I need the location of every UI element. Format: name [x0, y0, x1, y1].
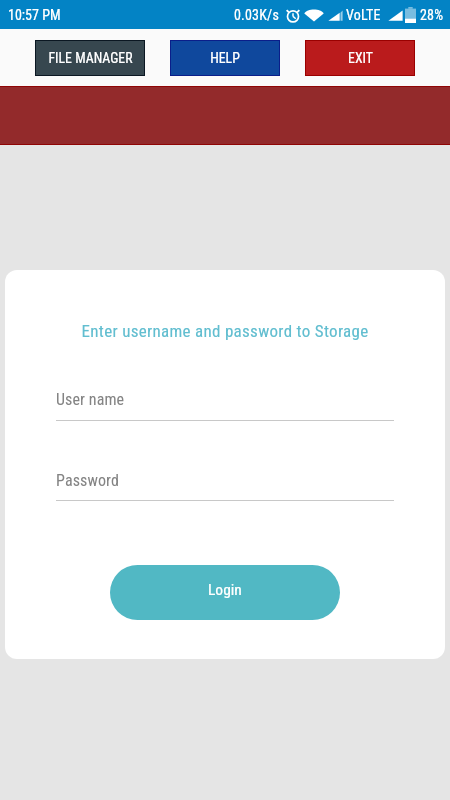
other: Mobile signal: [328, 7, 343, 23]
other: Mobile signal 2: [388, 7, 403, 23]
button[interactable]: User name: [56, 382, 394, 421]
other: Alarm set: [285, 7, 301, 23]
staticText: Login: [208, 581, 242, 599]
staticText: Password: [56, 471, 119, 490]
staticText: HELP: [210, 50, 240, 66]
staticText: 0.03K/s: [234, 7, 280, 23]
button[interactable]: EXIT: [306, 41, 414, 75]
button[interactable]: Login: [110, 565, 340, 620]
staticText: 10:57 PM: [8, 7, 61, 23]
button[interactable]: Password: [56, 463, 394, 501]
staticText: 28%: [420, 7, 444, 23]
other: Wi-Fi: [304, 7, 324, 23]
button[interactable]: HELP: [171, 41, 279, 75]
other: Battery 28 percent: [405, 7, 416, 23]
staticText: FILE MANAGER: [48, 50, 133, 66]
button[interactable]: FILE MANAGER: [36, 41, 144, 75]
staticText: User name: [56, 390, 125, 409]
staticText: EXIT: [348, 50, 373, 66]
staticText: Enter username and password to Storage: [5, 321, 445, 341]
staticText: VoLTE: [346, 7, 381, 23]
